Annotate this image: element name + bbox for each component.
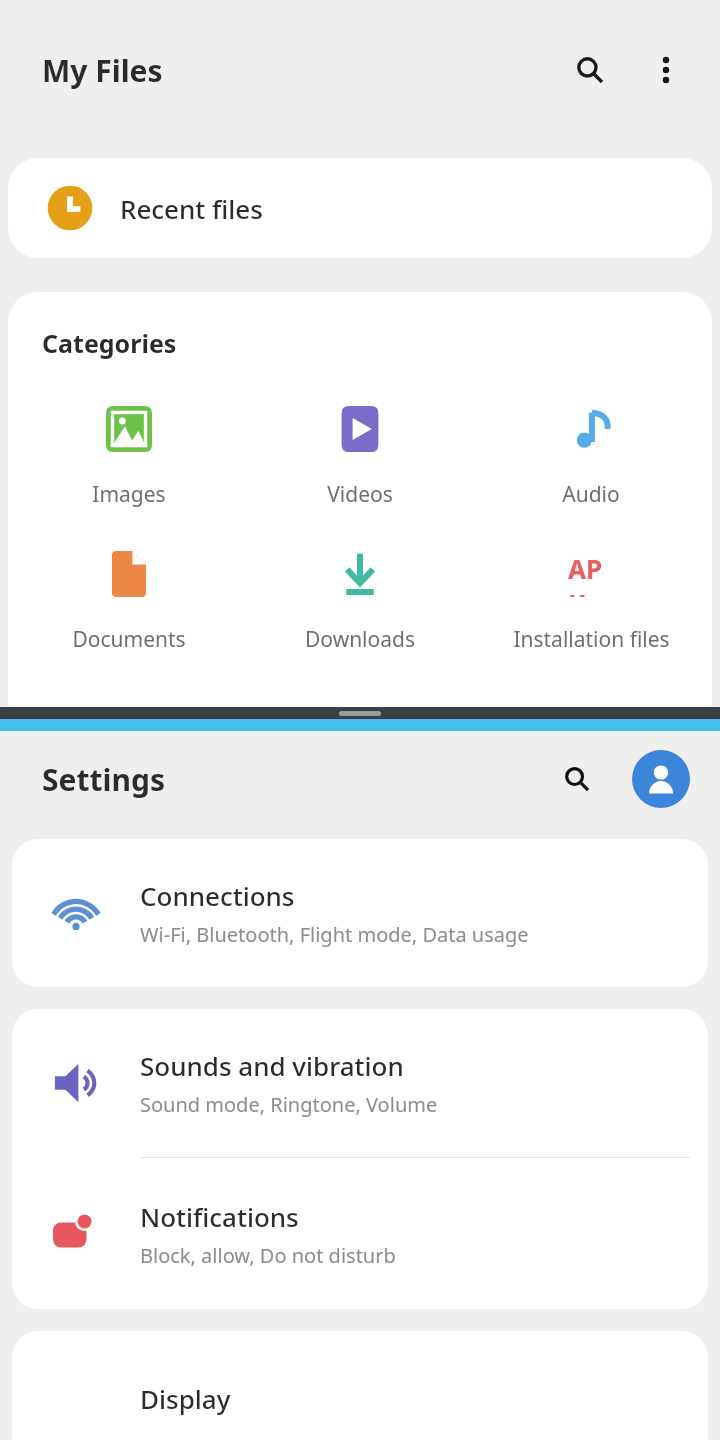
staticText: Settings — [42, 759, 165, 800]
button[interactable]: Downloads — [250, 547, 470, 654]
staticText: Installation files — [513, 625, 670, 654]
button[interactable]: Search settings — [550, 752, 604, 806]
staticText: Sounds and vibration — [140, 1048, 404, 1083]
button[interactable]: Sounds and vibration — [12, 1009, 708, 1157]
staticText: Audio — [562, 480, 620, 509]
button[interactable]: More options — [640, 44, 692, 96]
button[interactable]: Audio — [481, 402, 701, 509]
staticText: Display — [140, 1381, 231, 1416]
button[interactable]: Recent files — [8, 158, 712, 258]
staticText: Recent files — [120, 191, 263, 226]
staticText: Images — [92, 480, 166, 509]
button[interactable]: Account — [632, 750, 690, 808]
staticText: Connections — [140, 878, 295, 913]
button[interactable]: Documents — [19, 547, 239, 654]
staticText: Sound mode, Ringtone, Volume — [140, 1091, 438, 1118]
staticText: My Files — [42, 50, 163, 91]
staticText: Wi-Fi, Bluetooth, Flight mode, Data usag… — [140, 921, 529, 948]
button[interactable]: Connections — [12, 839, 708, 987]
staticText: Downloads — [305, 625, 415, 654]
button[interactable]: Videos — [250, 402, 470, 509]
button[interactable]: APK — [481, 547, 701, 654]
staticText: Documents — [72, 625, 186, 654]
staticText: Notifications — [140, 1199, 299, 1234]
button[interactable]: Search — [562, 42, 618, 98]
staticText: Videos — [327, 480, 393, 509]
button[interactable]: Display — [12, 1331, 708, 1440]
staticText: Block, allow, Do not disturb — [140, 1242, 396, 1269]
staticText: APK — [568, 551, 614, 597]
button[interactable]: Notifications — [12, 1158, 708, 1309]
button[interactable]: Images — [19, 402, 239, 509]
staticText: Categories — [42, 326, 177, 360]
